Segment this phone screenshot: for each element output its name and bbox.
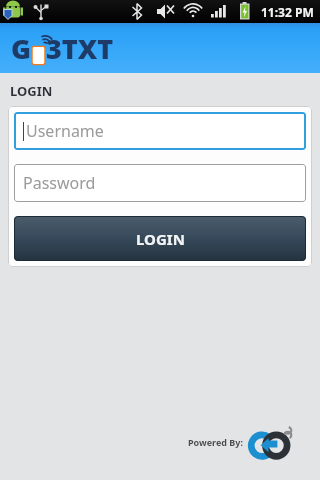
button[interactable]: Password: [14, 164, 306, 202]
staticText: G: [11, 30, 31, 67]
other: GO3 logo: [248, 424, 310, 460]
staticText: 3TXT: [46, 30, 114, 67]
staticText: LOGIN: [136, 229, 185, 249]
staticText: Password: [23, 172, 96, 194]
staticText: 11:32 PM: [261, 4, 314, 20]
button[interactable]: LOGIN: [14, 216, 306, 261]
other: GO3TXT: [0, 23, 320, 73]
staticText: Username: [26, 120, 104, 142]
button[interactable]: Username: [14, 112, 306, 150]
staticText: LOGIN: [10, 82, 53, 100]
staticText: Powered By:: [188, 436, 244, 448]
